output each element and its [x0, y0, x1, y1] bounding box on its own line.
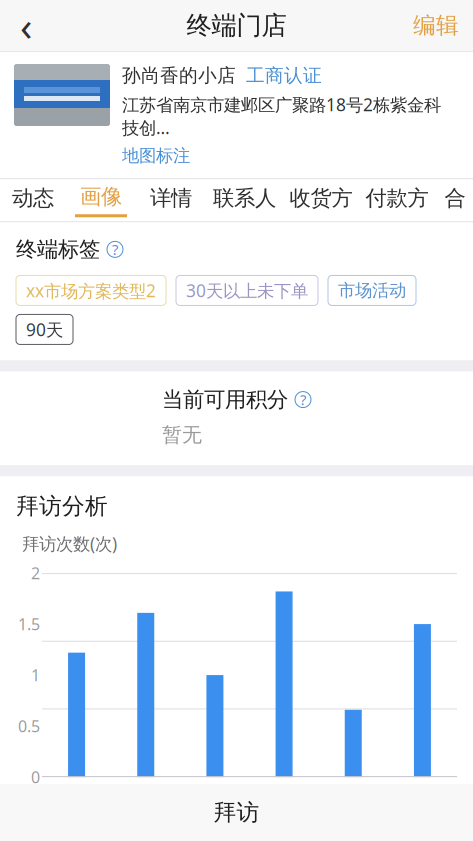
button[interactable]: 拜访: [0, 784, 473, 841]
button[interactable]: 积分说明: [295, 392, 311, 408]
staticText: ?: [300, 390, 306, 409]
button[interactable]: 收货方: [283, 179, 359, 221]
staticText: 编辑: [413, 12, 459, 39]
staticText: 当前可用积分: [162, 386, 288, 413]
staticText: 付款方: [365, 185, 428, 211]
staticText: 收货方: [289, 185, 352, 211]
button[interactable]: 合: [435, 179, 473, 221]
button[interactable]: 90天: [16, 314, 73, 344]
staticText: 孙尚香的小店: [122, 64, 236, 87]
staticText: 拜访: [213, 799, 259, 826]
staticText: 市场活动: [338, 280, 406, 301]
staticText: 江苏省南京市建邺区广聚路18号2栋紫金科技创…: [122, 93, 441, 139]
button[interactable]: 编辑: [399, 0, 473, 50]
button[interactable]: 市场活动: [328, 275, 416, 305]
staticText: 地图标注: [122, 145, 190, 166]
staticText: 详情: [150, 185, 192, 211]
staticText: 暂无: [162, 423, 202, 447]
button[interactable]: Back: [0, 0, 52, 50]
staticText: 动态: [12, 185, 54, 211]
staticText: 工商认证: [246, 64, 322, 87]
staticText: 0: [31, 766, 40, 788]
button[interactable]: 详情: [136, 179, 206, 221]
staticText: ?: [112, 240, 118, 259]
button[interactable]: 终端标签说明: [107, 241, 123, 257]
staticText: 90天: [26, 318, 63, 341]
staticText: xx市场方案类型2: [26, 279, 156, 302]
button[interactable]: 孙尚香的小店: [0, 52, 473, 178]
staticText: 2: [31, 562, 40, 584]
staticText: 1: [31, 664, 40, 686]
staticText: 30天以上未下单: [186, 279, 308, 302]
button[interactable]: 联系人: [206, 179, 283, 221]
button[interactable]: 动态: [0, 179, 66, 221]
staticText: 0.5: [18, 715, 40, 737]
staticText: 联系人: [213, 185, 276, 211]
button[interactable]: xx市场方案类型2: [16, 275, 166, 305]
staticText: 合: [444, 185, 465, 211]
staticText: 拜访次数(次): [22, 532, 117, 555]
staticText: 终端门店: [186, 10, 286, 41]
button[interactable]: 画像: [66, 179, 136, 221]
staticText: 画像: [80, 184, 122, 210]
staticText: 1.5: [18, 613, 40, 635]
staticText: 终端标签: [16, 236, 100, 262]
staticText: 拜访分析: [16, 492, 108, 520]
button[interactable]: 30天以上未下单: [176, 275, 318, 305]
button[interactable]: 付款方: [359, 179, 435, 221]
staticText: 2020-07: [188, 784, 241, 804]
staticText: ‹: [20, 0, 32, 52]
